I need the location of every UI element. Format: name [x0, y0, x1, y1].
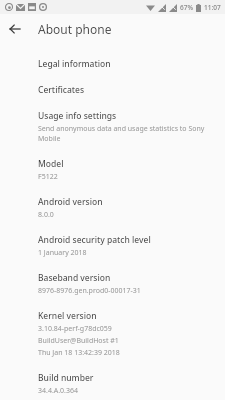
staticText: About phone — [38, 21, 112, 37]
staticText: 8.0.0 — [38, 210, 54, 220]
staticText: Baseband version — [38, 272, 111, 284]
staticText: Android version — [38, 196, 103, 208]
button[interactable]: Usage info settings — [0, 103, 225, 151]
staticText: 11:07 — [204, 3, 221, 12]
button[interactable]: Certificates — [0, 77, 225, 103]
button[interactable]: Build number — [0, 365, 225, 400]
staticText: BuildUser@BuildHost #1 — [38, 336, 119, 346]
staticText: Thu Jan 18 13:42:39 2018 — [38, 348, 120, 358]
staticText: Legal information — [38, 58, 111, 70]
button[interactable]: Navigate up — [4, 18, 26, 40]
staticText: Build number — [38, 372, 94, 384]
staticText: 34.4.A.0.364 — [38, 386, 79, 393]
staticText: Certificates — [38, 84, 85, 96]
button[interactable]: Kernel version — [0, 303, 225, 365]
staticText: 3.10.84-perf-g78dc059 — [38, 324, 112, 334]
button[interactable]: Legal information — [0, 51, 225, 77]
staticText: 8976-8976.gen.prod0-00017-31 — [38, 286, 141, 296]
button[interactable]: Baseband version — [0, 265, 225, 303]
staticText: 1 January 2018 — [38, 248, 87, 258]
staticText: Kernel version — [38, 310, 97, 322]
staticText: 67% — [180, 3, 193, 12]
button[interactable]: Android version — [0, 189, 225, 227]
staticText: Send anonymous data and usage statistics… — [38, 124, 215, 144]
staticText: Model — [38, 158, 64, 170]
button[interactable]: Android security patch level — [0, 227, 225, 265]
button[interactable]: Model — [0, 151, 225, 189]
staticText: F5122 — [38, 172, 58, 182]
staticText: Android security patch level — [38, 234, 151, 246]
staticText: Usage info settings — [38, 110, 117, 122]
